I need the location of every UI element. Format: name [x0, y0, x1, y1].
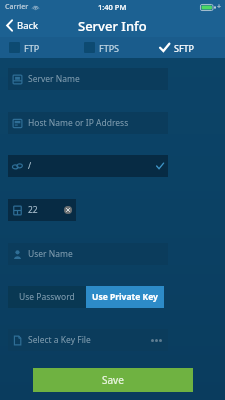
staticText: Host Name or IP Address: [28, 117, 129, 129]
button[interactable]: /: [8, 155, 168, 177]
button[interactable]: User Name: [8, 243, 168, 265]
staticText: Server Name: [28, 73, 80, 85]
staticText: Save: [102, 373, 124, 387]
button[interactable]: FTP: [0, 37, 75, 58]
staticText: Server Info: [78, 17, 147, 35]
button[interactable]: SFTP: [150, 37, 225, 58]
button[interactable]: Browse: [149, 339, 164, 342]
staticText: Select a Key File: [28, 334, 91, 346]
button[interactable]: Select a Key File: [8, 329, 168, 351]
staticText: +: [217, 2, 222, 12]
button[interactable]: Back: [0, 15, 47, 36]
staticText: 22: [28, 204, 38, 216]
staticText: Carrier: [5, 2, 29, 12]
staticText: User Name: [28, 248, 73, 260]
button[interactable]: Host Name or IP Address: [8, 112, 168, 134]
staticText: FTPS: [99, 42, 120, 54]
staticText: SFTP: [174, 42, 195, 54]
button[interactable]: FTPS: [75, 37, 150, 58]
button[interactable]: Server Name: [8, 68, 168, 90]
button[interactable]: Clear: [64, 206, 72, 214]
button[interactable]: Use Password: [8, 286, 86, 308]
button[interactable]: 22: [8, 199, 76, 221]
staticText: Use Private Key: [92, 291, 158, 303]
staticText: Use Password: [19, 291, 75, 303]
staticText: Back: [17, 19, 39, 32]
other: Valid: [156, 162, 164, 170]
button[interactable]: Save: [33, 368, 193, 392]
button[interactable]: Use Private Key: [86, 286, 164, 308]
staticText: FTP: [24, 42, 40, 54]
staticText: 1:40 PM: [98, 2, 127, 12]
staticText: /: [28, 160, 32, 172]
